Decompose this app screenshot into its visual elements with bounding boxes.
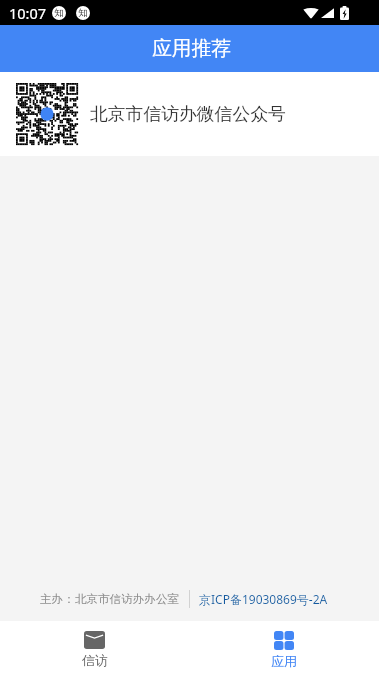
button[interactable]: 京ICP备19030869号-2A — [199, 591, 328, 607]
staticText: 知 — [54, 7, 64, 19]
staticText: 北京市信访办微信公众号 — [90, 103, 286, 125]
staticText: 应用推荐 — [152, 36, 232, 61]
staticText: 10:07 — [9, 3, 47, 23]
staticText: 主办：北京市信访办办公室 — [40, 592, 180, 607]
button[interactable]: 北京市信访办微信公众号二维码 — [0, 72, 379, 156]
button[interactable]: 应用 — [189, 621, 379, 669]
staticText: 信访 — [82, 652, 108, 668]
staticText: 应用 — [271, 653, 297, 669]
button[interactable]: 信访 — [0, 621, 189, 668]
staticText: 知 — [78, 7, 88, 19]
